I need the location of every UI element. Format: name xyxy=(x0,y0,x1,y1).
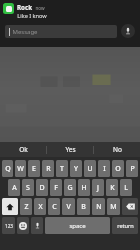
staticText: now xyxy=(35,5,45,11)
button[interactable]: A xyxy=(8,179,20,196)
button[interactable]: N xyxy=(92,198,105,215)
button[interactable]: V xyxy=(62,198,75,215)
staticText: 123 xyxy=(5,223,13,229)
staticText: V xyxy=(66,202,71,212)
button[interactable]: Z xyxy=(20,198,32,215)
button[interactable]: R xyxy=(42,160,54,177)
staticText: Z xyxy=(24,202,29,212)
staticText: T xyxy=(60,164,64,174)
button[interactable]: O xyxy=(112,160,124,177)
staticText: K xyxy=(110,183,115,193)
button[interactable]: Shift xyxy=(2,198,18,215)
button[interactable]: P xyxy=(126,160,138,177)
staticText: S xyxy=(26,183,30,193)
staticText: X xyxy=(38,202,43,212)
staticText: N xyxy=(96,202,102,212)
staticText: U xyxy=(87,164,93,174)
staticText: Ok xyxy=(19,145,28,154)
button[interactable]: S xyxy=(22,179,34,196)
staticText: I xyxy=(103,164,106,174)
staticText: Y xyxy=(74,164,78,174)
button[interactable]: Message xyxy=(5,25,117,38)
staticText: W xyxy=(17,164,24,174)
button[interactable]: space xyxy=(45,217,110,234)
button[interactable]: H xyxy=(78,179,90,196)
button[interactable]: E xyxy=(28,160,40,177)
button[interactable]: T xyxy=(56,160,68,177)
button[interactable]: F xyxy=(50,179,62,196)
button[interactable]: Emoji xyxy=(17,217,29,234)
button[interactable]: Ok xyxy=(0,142,46,157)
button[interactable]: G xyxy=(64,179,76,196)
staticText: F xyxy=(54,183,58,193)
button[interactable]: Backspace xyxy=(122,198,138,215)
staticText: E xyxy=(32,164,36,174)
staticText: P xyxy=(130,164,135,174)
button[interactable]: X xyxy=(34,198,46,215)
staticText: Like I know xyxy=(17,12,47,20)
button[interactable]: C xyxy=(48,198,60,215)
staticText: Yes xyxy=(65,145,76,154)
button[interactable]: J xyxy=(92,179,104,196)
staticText: A xyxy=(12,183,17,193)
button[interactable]: No xyxy=(94,142,140,157)
button[interactable]: M xyxy=(107,198,120,215)
button[interactable]: W xyxy=(15,160,26,177)
staticText: M xyxy=(110,202,117,212)
button[interactable]: Record voice message xyxy=(121,24,135,38)
staticText: O xyxy=(115,164,121,174)
button[interactable]: D xyxy=(36,179,48,196)
button[interactable]: Y xyxy=(70,160,82,177)
button[interactable]: I xyxy=(98,160,110,177)
staticText: Q xyxy=(5,164,11,174)
staticText: Rock xyxy=(17,3,32,11)
staticText: L xyxy=(124,183,128,193)
staticText: B xyxy=(81,202,86,212)
staticText: H xyxy=(81,183,87,193)
staticText: D xyxy=(39,183,45,193)
button[interactable]: K xyxy=(106,179,118,196)
staticText: Message xyxy=(12,28,38,36)
staticText: return xyxy=(117,222,134,230)
button[interactable]: U xyxy=(84,160,96,177)
button[interactable]: L xyxy=(120,179,132,196)
staticText: J xyxy=(97,183,99,193)
staticText: C xyxy=(52,202,57,212)
button[interactable]: 123 xyxy=(2,217,15,234)
button[interactable]: return xyxy=(112,217,138,234)
button[interactable]: Yes xyxy=(47,142,93,157)
button[interactable]: B xyxy=(77,198,90,215)
staticText: space xyxy=(69,222,86,230)
button[interactable]: Dictation xyxy=(31,217,43,234)
staticText: No xyxy=(113,145,122,154)
staticText: G xyxy=(67,183,73,193)
staticText: R xyxy=(46,164,51,174)
button[interactable]: Q xyxy=(2,160,13,177)
